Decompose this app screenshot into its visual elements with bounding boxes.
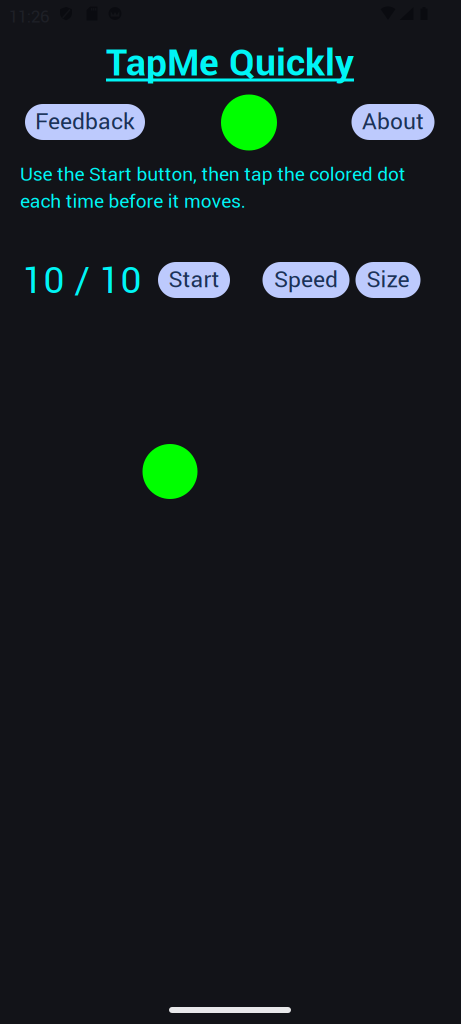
button[interactable]: About — [351, 104, 434, 140]
staticText: each time before it moves. — [20, 188, 246, 215]
button[interactable]: Color indicator — [221, 94, 277, 150]
staticText: Use the Start button, then tap the color… — [20, 161, 406, 188]
button[interactable]: Speed — [262, 262, 349, 298]
staticText: 11:26 — [9, 5, 49, 29]
staticText: Start — [168, 264, 219, 296]
button[interactable]: Tap target — [142, 444, 197, 499]
staticText: 10 / 10 — [22, 254, 141, 308]
staticText: Size — [366, 264, 409, 296]
staticText: Feedback — [35, 106, 135, 138]
button[interactable]: Start — [158, 262, 230, 298]
button[interactable]: TapMe Quickly — [106, 48, 354, 81]
staticText: TapMe Quickly — [106, 37, 354, 90]
staticText: About — [362, 106, 424, 138]
staticText: Speed — [274, 264, 338, 296]
button[interactable]: Feedback — [25, 104, 145, 140]
button[interactable]: Size — [355, 262, 420, 298]
